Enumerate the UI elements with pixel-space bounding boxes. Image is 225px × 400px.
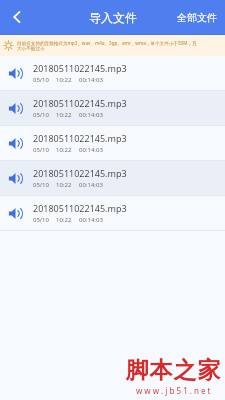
staticText: 00:14:03 <box>79 76 103 84</box>
staticText: 05/10 <box>33 181 49 189</box>
staticText: 大小不能过小 <box>17 46 45 52</box>
staticText: 导入文件 <box>89 10 137 25</box>
staticText: 目前仅支持的音频格式为mp3、wav、m4a、3gp、amr、wma，单个文件小… <box>17 40 197 46</box>
staticText: 00:14:03 <box>79 146 103 154</box>
staticText: 05/10 <box>33 76 49 84</box>
staticText: 10:22 <box>56 146 72 154</box>
button[interactable]: Back <box>0 0 34 34</box>
button[interactable]: Audio file <box>0 161 225 195</box>
staticText: 20180511022145.mp3 <box>33 132 127 144</box>
staticText: w w w . j b 5 1 . n e t <box>136 385 211 396</box>
staticText: 05/10 <box>33 111 49 119</box>
button[interactable]: Audio file <box>0 91 225 125</box>
staticText: 20180511022145.mp3 <box>33 167 127 179</box>
button[interactable]: Audio file <box>0 126 225 160</box>
staticText: 10:22 <box>56 76 72 84</box>
other: Audio file <box>8 101 23 116</box>
staticText: 20180511022145.mp3 <box>33 97 127 109</box>
staticText: 00:14:03 <box>79 181 103 189</box>
staticText: 20180511022145.mp3 <box>33 202 127 214</box>
other: Audio file <box>8 66 23 81</box>
staticText: 10:22 <box>56 111 72 119</box>
staticText: 全部文件 <box>177 11 217 24</box>
staticText: 10:22 <box>56 216 72 224</box>
staticText: 05/10 <box>33 146 49 154</box>
button[interactable]: 全部文件 <box>169 0 225 34</box>
staticText: 10:22 <box>56 181 72 189</box>
button[interactable]: Audio file <box>0 196 225 230</box>
staticText: 00:14:03 <box>79 111 103 119</box>
other: Audio file <box>8 206 23 221</box>
staticText: 20180511022145.mp3 <box>33 62 127 74</box>
button[interactable]: Audio file <box>0 56 225 90</box>
other: Audio file <box>8 171 23 186</box>
staticText: 00:14:03 <box>79 216 103 224</box>
other: Audio file <box>8 136 23 151</box>
staticText: 05/10 <box>33 216 49 224</box>
staticText: 脚本之家 <box>125 356 221 385</box>
